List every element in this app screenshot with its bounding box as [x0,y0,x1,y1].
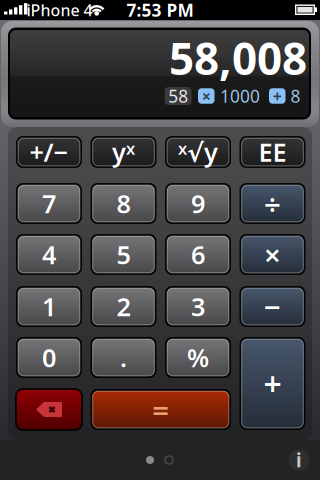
staticText: × [264,235,281,274]
staticText: ÷ [264,184,281,223]
button[interactable]: 6 [165,234,231,275]
staticText: 8 [290,84,300,107]
staticText: i [296,448,302,472]
staticText: 58 [168,84,188,107]
button[interactable]: 5 [90,234,156,275]
button[interactable]: Delete [16,389,82,430]
button[interactable]: Info [288,449,309,470]
button[interactable]: ÷ [239,183,305,224]
button[interactable]: 4 [16,234,82,275]
staticText: EE [258,135,286,169]
staticText: 7:53 PM [126,0,193,21]
staticText: ˣ√y [178,135,218,169]
staticText: 6 [191,238,205,271]
button[interactable]: = [90,389,231,430]
staticText: 7 [42,187,56,220]
button[interactable]: EE [239,136,305,168]
staticText: 9 [191,187,205,220]
staticText: . [120,341,127,374]
staticText: iPhone 4 [26,0,92,21]
staticText: × [202,85,211,107]
button[interactable]: yˣ [90,136,156,168]
staticText: 0 [42,341,56,374]
staticText: % [187,341,209,374]
staticText: 8 [116,187,130,220]
button[interactable]: 8 [90,183,156,224]
button[interactable]: 3 [165,286,231,327]
button[interactable]: 1 [16,286,82,327]
staticText: 1 [42,290,56,323]
staticText: 4 [42,238,56,271]
button[interactable]: ˣ√y [165,136,231,168]
button[interactable]: . [90,337,156,378]
staticText: +/− [29,135,68,169]
button[interactable]: 9 [165,183,231,224]
button[interactable]: × [239,234,305,275]
button[interactable]: 2 [90,286,156,327]
button[interactable]: + [239,337,305,430]
staticText: = [152,390,169,429]
staticText: 1000 [220,84,260,107]
staticText: + [273,85,282,107]
button[interactable]: − [239,286,305,327]
staticText: − [264,287,281,326]
staticText: + [263,362,281,405]
button[interactable]: +/− [16,136,82,168]
button[interactable]: 0 [16,337,82,378]
staticText: 58,008 [169,29,307,87]
staticText: 3 [191,290,205,323]
button[interactable]: % [165,337,231,378]
staticText: 2 [116,290,130,323]
staticText: yˣ [112,135,135,169]
button[interactable]: 7 [16,183,82,224]
staticText: 5 [116,238,130,271]
